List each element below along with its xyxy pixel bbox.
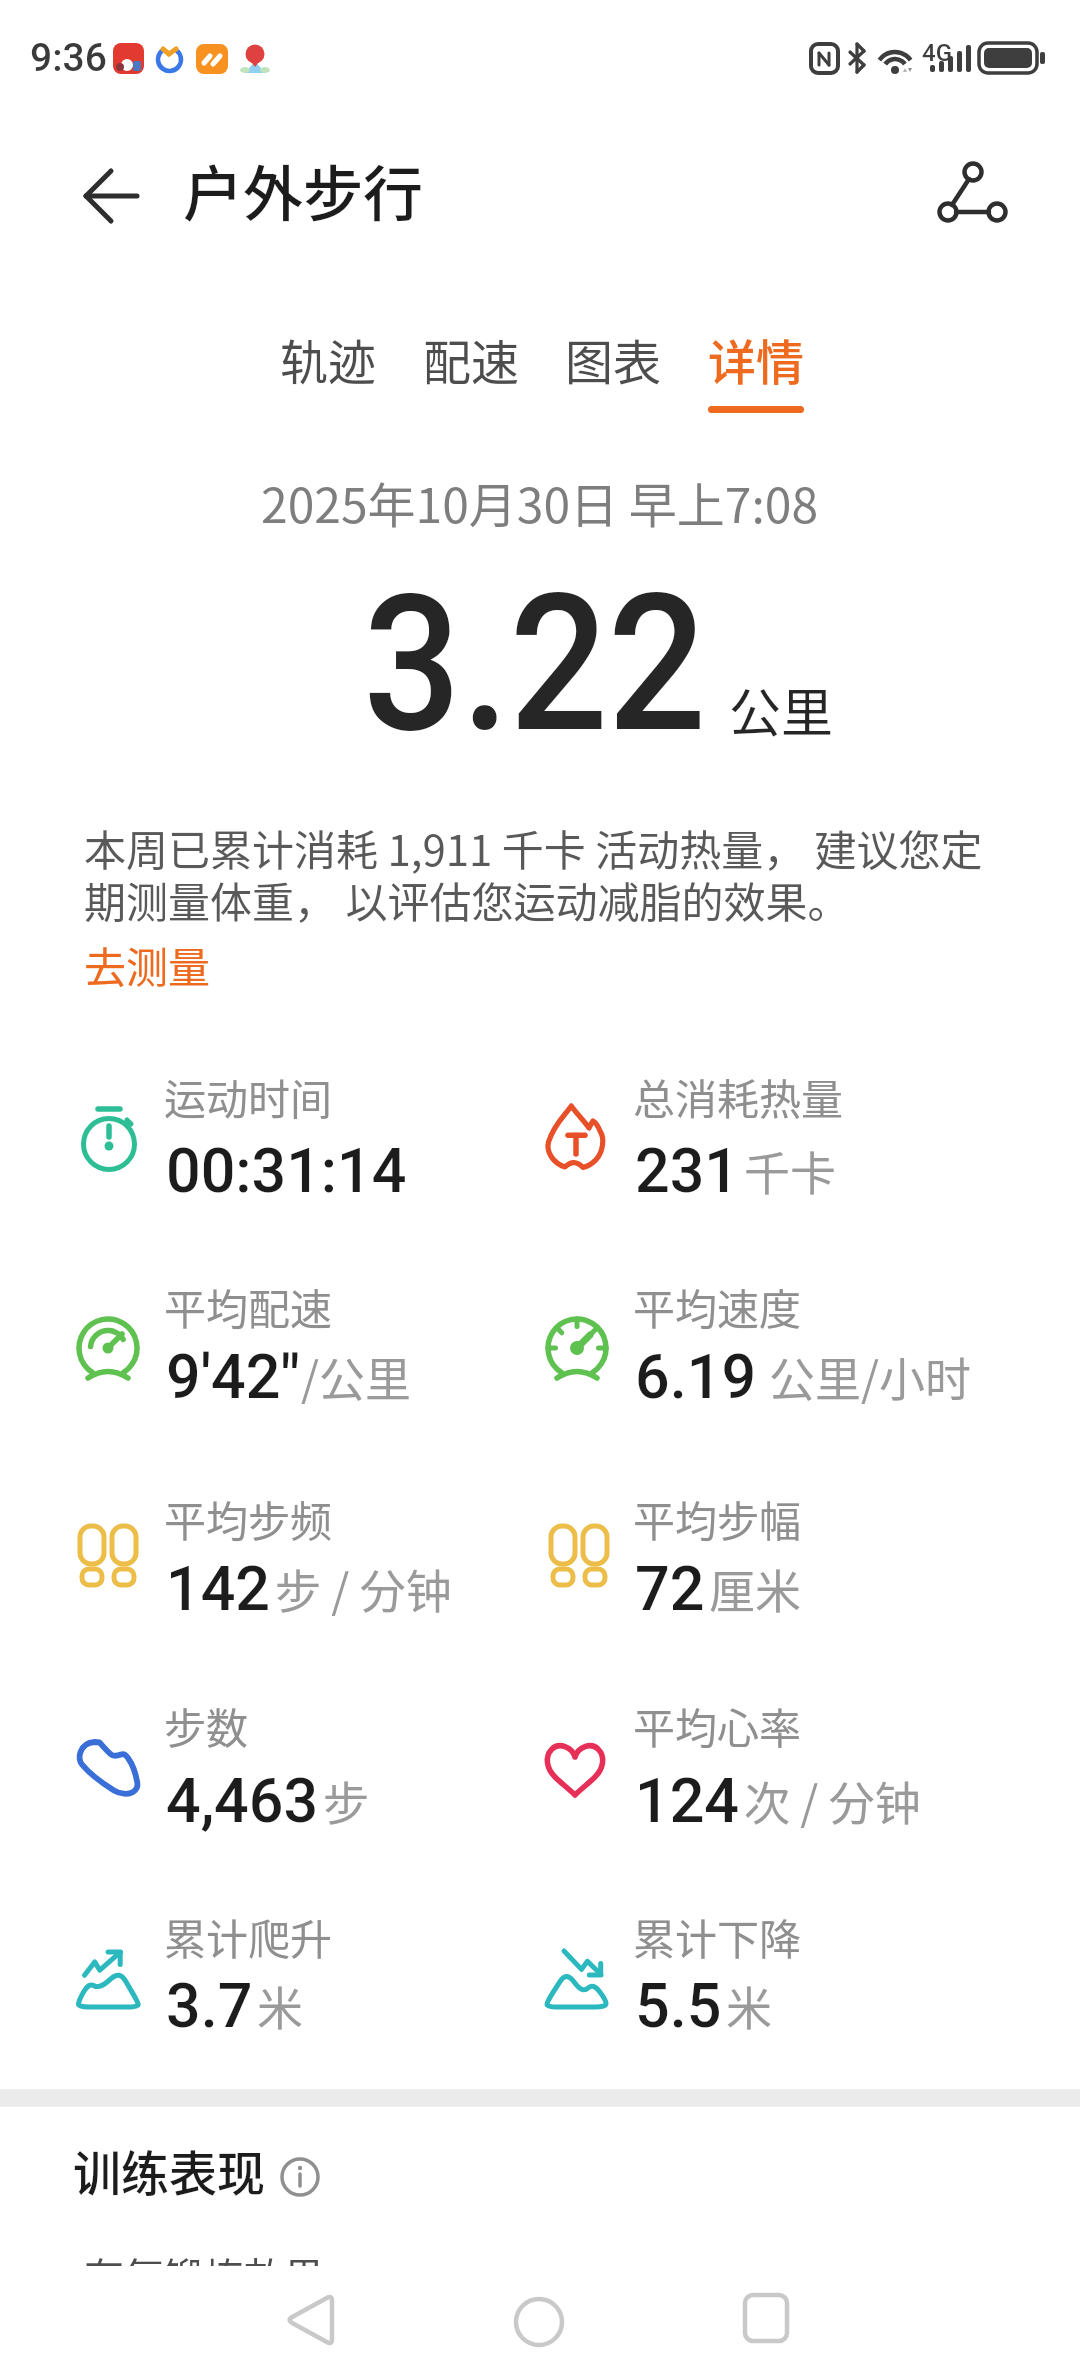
staticText: 总消耗热量 (633, 1066, 844, 1127)
staticText: 9:36 (30, 35, 107, 81)
staticText: 124 (635, 1765, 740, 1836)
staticText: 2025年10月30日 早上7:08 (261, 467, 819, 537)
staticText: 去测量 (84, 934, 211, 995)
staticText: 6.19 (635, 1341, 757, 1412)
staticText: 平均心率 (633, 1695, 802, 1756)
staticText: 平均步幅 (633, 1488, 802, 1549)
staticText: 米 (726, 1972, 772, 2039)
staticText: 配速 (423, 324, 520, 394)
staticText: 平均速度 (633, 1276, 802, 1337)
staticText: 累计爬升 (164, 1906, 333, 1967)
button[interactable]: 图表 (565, 324, 662, 394)
staticText: 9'42" (166, 1341, 301, 1412)
staticText: 72 (635, 1553, 705, 1624)
staticText: 公里/小时 (769, 1343, 972, 1410)
staticText: 千卡 (744, 1137, 836, 1204)
staticText: 厘米 (709, 1555, 801, 1622)
staticText: 4,463 (166, 1765, 319, 1836)
button[interactable] (265, 2280, 355, 2370)
staticText: 3.7 (166, 1970, 253, 2041)
staticText: 次 / 分钟 (744, 1767, 921, 1834)
staticText: 3.22 (363, 553, 707, 776)
staticText: 231 (635, 1135, 740, 1206)
button[interactable]: 配速 (423, 324, 520, 394)
staticText: 平均步频 (164, 1488, 333, 1549)
staticText: 轨迹 (280, 324, 377, 394)
staticText: 步 (323, 1767, 369, 1834)
staticText: 平均配速 (164, 1276, 333, 1337)
staticText: /公里 (301, 1343, 412, 1410)
button[interactable]: 去测量 (84, 934, 211, 995)
button[interactable] (721, 2280, 811, 2370)
staticText: 有氧锻炼效果 (84, 2246, 324, 2304)
staticText: 步 / 分钟 (275, 1555, 452, 1622)
staticText: 图表 (565, 324, 662, 394)
staticText: 米 (257, 1972, 303, 2039)
staticText: 公里 (729, 672, 834, 747)
staticText: 142 (166, 1553, 271, 1624)
staticText: 累计下降 (633, 1906, 802, 1967)
staticText: 详情 (708, 324, 805, 394)
staticText: 4G (922, 39, 952, 67)
staticText: 户外步行 (183, 146, 423, 233)
staticText: 本周已累计消耗 1,911 千卡 活动热量， 建议您定 期测量体重， 以评估您运… (84, 817, 983, 931)
button[interactable] (494, 2280, 584, 2370)
staticText: 运动时间 (164, 1066, 333, 1127)
button[interactable]: 详情 (708, 324, 805, 394)
staticText: 步数 (164, 1695, 249, 1756)
staticText: 5.5 (635, 1970, 722, 2041)
staticText: 训练表现 (73, 2135, 266, 2205)
button[interactable]: 轨迹 (280, 324, 377, 394)
button[interactable] (925, 145, 1020, 240)
button[interactable] (60, 150, 160, 240)
staticText: 00:31:14 (166, 1135, 407, 1206)
